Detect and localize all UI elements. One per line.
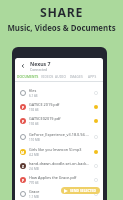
button[interactable]: APPS (85, 72, 99, 81)
staticText: M (21, 150, 25, 155)
button[interactable]: Select file (92, 89, 100, 97)
button[interactable]: VIDEOS (40, 72, 54, 81)
button[interactable]: Select file (92, 176, 100, 184)
staticText: P (22, 178, 25, 183)
button[interactable]: Select file (92, 103, 100, 111)
staticText: APPS (88, 75, 97, 79)
staticText: AUDIO (55, 75, 67, 79)
staticText: Connected (30, 67, 48, 72)
staticText: VIDEOS (41, 75, 54, 79)
button[interactable]: Select file (92, 162, 100, 170)
button[interactable]: DOCUMENTS (15, 72, 40, 81)
button[interactable]: Select file (92, 133, 100, 141)
button[interactable]: GeForce_Experience_v3.18.0.94.exe (15, 128, 103, 145)
button[interactable]: Grace (15, 187, 103, 200)
staticText: How Applies the Grace.pdf (29, 175, 77, 180)
staticText: Grace (29, 189, 40, 194)
staticText: GeForce_Experience_v3.18.0.94.exe (29, 132, 90, 137)
button[interactable]: P (15, 114, 103, 128)
staticText: 192 kB (29, 108, 39, 112)
button[interactable]: P (15, 100, 103, 114)
staticText: P (22, 119, 25, 124)
staticText: P (22, 105, 25, 110)
staticText: 110 MB (29, 138, 40, 142)
staticText: 2.6 MB (29, 167, 39, 171)
button[interactable]: SEND SELECTED (61, 187, 100, 194)
staticText: 4.2 MB (29, 153, 39, 157)
staticText: SEND SELECTED (70, 188, 96, 193)
staticText: 770 kB (29, 181, 39, 185)
button[interactable]: AUDIO (54, 72, 67, 81)
staticText: IMAGES (70, 75, 83, 79)
staticText: files (29, 88, 37, 93)
staticText: 192 kB (29, 122, 39, 126)
staticText: hand-drawn-doodle-set-on-background.zip (29, 161, 90, 166)
staticText: SHARE (0, 4, 123, 21)
staticText: Nexus 7 (30, 60, 51, 67)
button[interactable]: files (15, 86, 103, 100)
staticText: GATSCE 2019.pdf (29, 102, 60, 107)
button[interactable]: Select file (92, 148, 100, 156)
button[interactable]: Select file (92, 190, 100, 198)
staticText: GATSCE02019.pdf (29, 116, 61, 121)
staticText: 1.1 MB (29, 195, 39, 199)
button[interactable]: IMAGES (67, 72, 85, 81)
staticText: Z (22, 164, 24, 169)
button[interactable]: P (15, 173, 103, 187)
button[interactable]: Back (15, 59, 30, 72)
button[interactable]: Select file (92, 117, 100, 125)
staticText: Music, Videos & Documents (0, 23, 123, 34)
staticText: 6.1 kB (29, 94, 38, 98)
staticText: Girls like you (maroon 5).mp3 (29, 147, 82, 152)
button[interactable]: M (15, 145, 103, 159)
staticText: DOCUMENTS (17, 75, 39, 79)
button[interactable]: Z (15, 159, 103, 173)
